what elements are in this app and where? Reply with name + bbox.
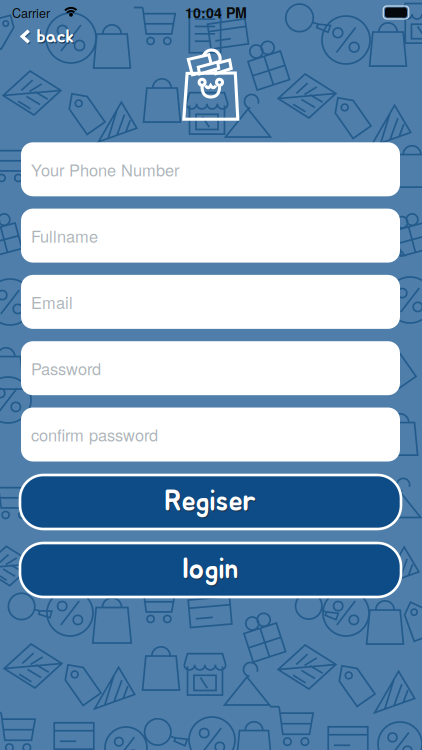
- staticText: Regiser: [164, 488, 256, 516]
- staticText: Email: [31, 290, 73, 314]
- staticText: Your Phone Number: [31, 158, 179, 181]
- staticText: login: [182, 556, 238, 584]
- staticText: 10:04 PM: [185, 2, 247, 23]
- button[interactable]: login: [20, 543, 401, 597]
- staticText: Carrier: [12, 3, 50, 21]
- staticText: back: [37, 28, 74, 47]
- staticText: login: [184, 557, 240, 585]
- button[interactable]: Regiser: [20, 475, 401, 529]
- staticText: confirm password: [31, 423, 158, 446]
- staticText: Regiser: [166, 489, 258, 517]
- button[interactable]: Back: [20, 27, 73, 46]
- staticText: Password: [31, 356, 101, 380]
- staticText: Fullname: [31, 224, 98, 247]
- staticText: back: [36, 27, 73, 46]
